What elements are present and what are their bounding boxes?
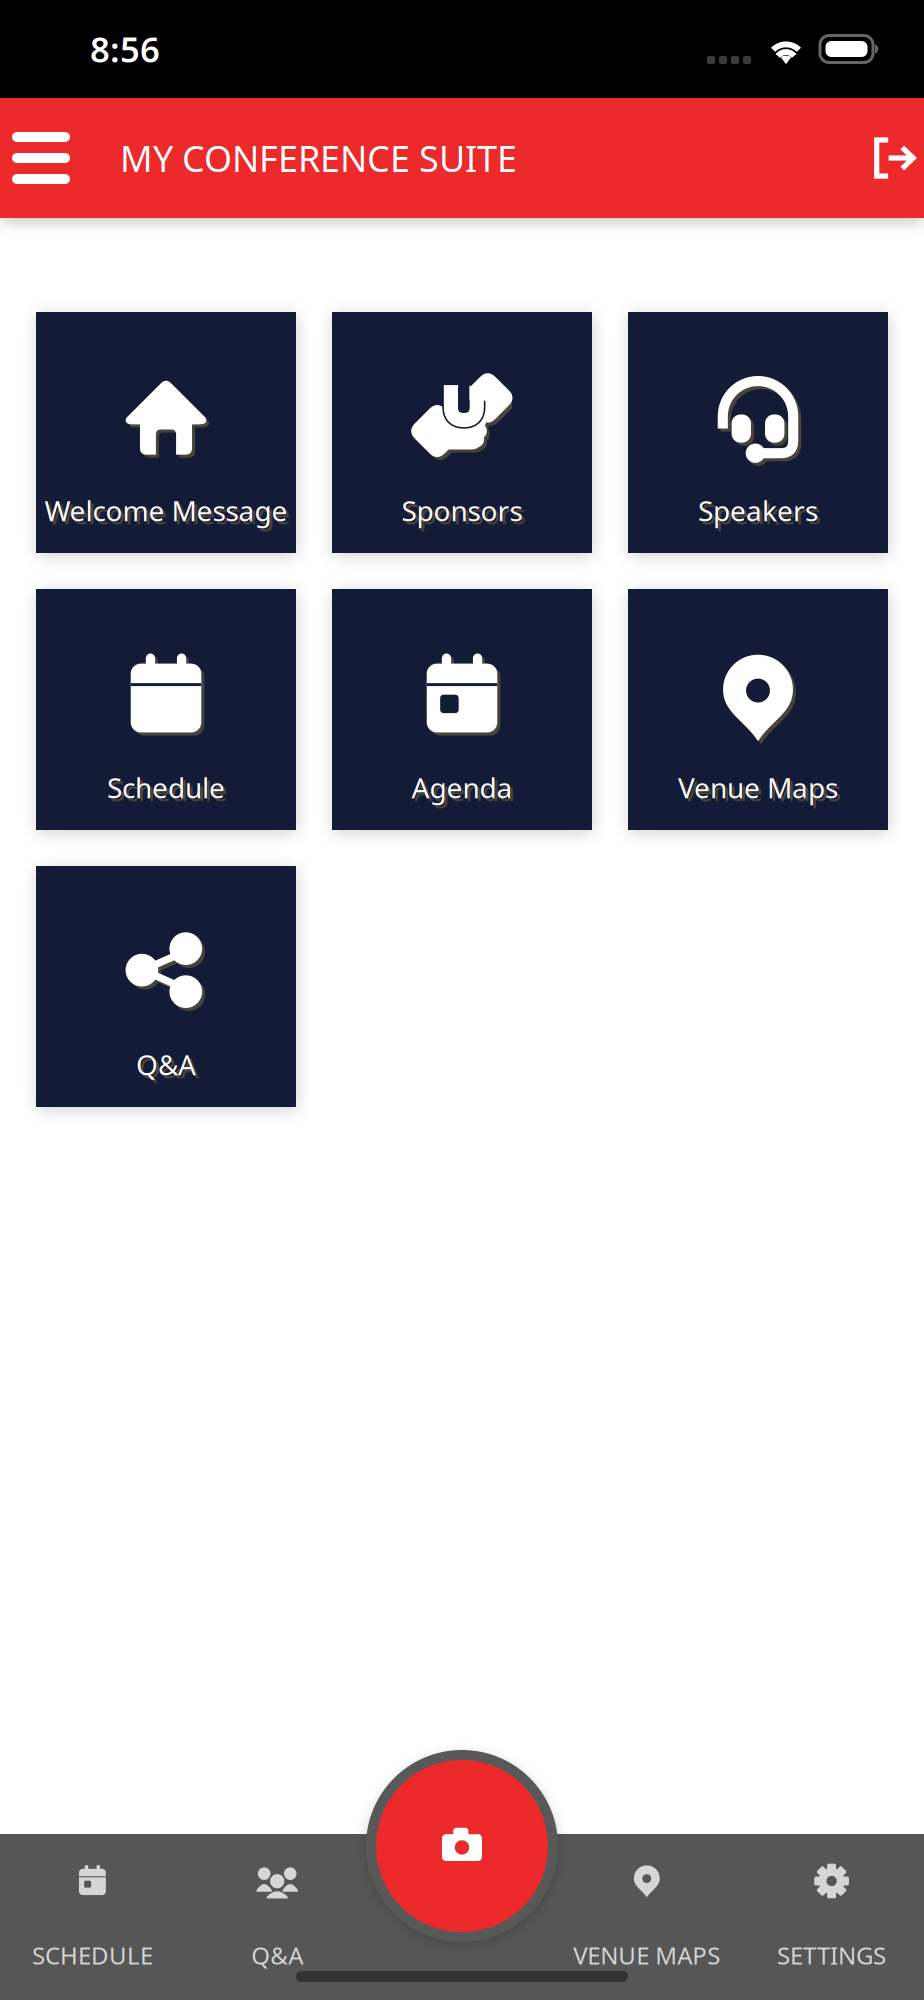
button[interactable]: Q&A [36,866,296,1107]
button[interactable]: Q&A [185,1834,370,2000]
button[interactable]: Camera [366,1750,558,1942]
staticText: MY CONFERENCE SUITE [120,134,517,182]
button[interactable]: Schedule [36,589,296,830]
button[interactable]: Log out [864,98,924,218]
staticText: VENUE MAPS [573,1939,720,1971]
button[interactable]: SETTINGS [739,1834,924,2000]
button[interactable]: Agenda [332,589,592,830]
staticText: Agenda [411,769,512,806]
staticText: 8:56 [90,26,160,72]
staticText: Q&A [251,1939,303,1971]
button[interactable]: SCHEDULE [0,1834,185,2000]
staticText: Speakers [698,492,818,529]
staticText: Sponsors [401,492,522,529]
staticText: Venue Maps [678,769,838,806]
button[interactable]: Welcome Message [36,312,296,553]
button[interactable]: Menu [0,98,82,218]
staticText: Welcome Message [44,492,287,529]
button[interactable]: VENUE MAPS [554,1834,739,2000]
button[interactable]: Speakers [628,312,888,553]
button[interactable]: Venue Maps [628,589,888,830]
button[interactable]: Sponsors [332,312,592,553]
staticText: Q&A [136,1046,196,1083]
staticText: SETTINGS [777,1939,886,1971]
staticText: SCHEDULE [32,1939,153,1971]
staticText: Schedule [107,769,225,806]
